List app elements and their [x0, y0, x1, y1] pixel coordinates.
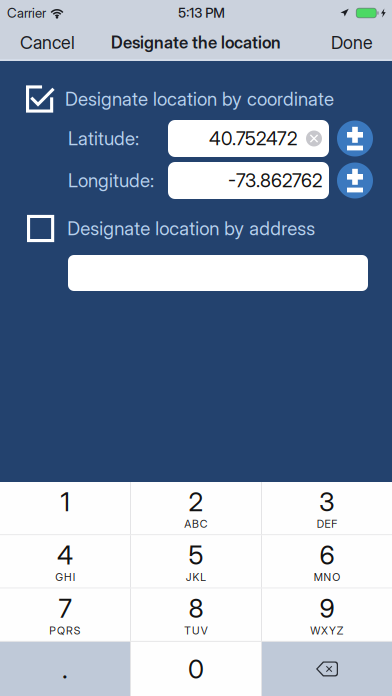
- button[interactable]: 7: [0, 589, 130, 641]
- button[interactable]: 1: [0, 482, 130, 534]
- staticText: 40.752472: [209, 127, 297, 150]
- staticText: Designate location by coordinate: [65, 88, 334, 110]
- staticText: DEF: [317, 517, 337, 530]
- button[interactable]: 5: [131, 535, 261, 588]
- button[interactable]: 4: [0, 535, 130, 588]
- staticText: Carrier: [7, 5, 46, 21]
- button[interactable]: 2: [131, 482, 261, 534]
- staticText: Longitude:: [68, 169, 154, 192]
- button[interactable]: Address: [0, 255, 392, 291]
- staticText: 3: [319, 486, 335, 517]
- button[interactable]: .: [0, 642, 130, 696]
- button[interactable]: Designate location by address: [0, 215, 392, 242]
- staticText: Designate location by address: [67, 217, 315, 240]
- button[interactable]: Delete: [262, 642, 392, 696]
- button[interactable]: 9: [262, 589, 392, 641]
- staticText: 0: [188, 653, 204, 685]
- button[interactable]: Adjust Latitude:: [337, 120, 373, 156]
- staticText: 5: [188, 539, 203, 571]
- button[interactable]: Adjust Longitude:: [337, 162, 373, 198]
- staticText: 7: [58, 593, 71, 624]
- staticText: 1: [60, 486, 69, 517]
- staticText: .: [62, 653, 68, 685]
- button[interactable]: 0: [131, 642, 261, 696]
- staticText: ABC: [184, 517, 208, 530]
- staticText: 4: [57, 539, 73, 571]
- staticText: TUV: [184, 624, 208, 637]
- staticText: 8: [188, 593, 203, 624]
- staticText: GHI: [55, 571, 75, 584]
- button[interactable]: Designate location by coordinate: [0, 85, 392, 113]
- staticText: 5:13 PM: [178, 5, 225, 21]
- staticText: JKL: [186, 571, 206, 584]
- staticText: 9: [319, 593, 334, 624]
- staticText: Done: [331, 32, 373, 53]
- staticText: WXYZ: [310, 624, 344, 637]
- staticText: Cancel: [20, 32, 75, 53]
- staticText: -73.862762: [228, 169, 322, 192]
- button[interactable]: Cancel: [0, 26, 89, 59]
- staticText: Latitude:: [68, 127, 139, 150]
- staticText: MNO: [314, 571, 340, 584]
- staticText: 6: [319, 539, 334, 571]
- staticText: Designate the location: [111, 32, 281, 53]
- staticText: PQRS: [49, 624, 81, 637]
- button[interactable]: Done: [317, 26, 392, 59]
- button[interactable]: 8: [131, 589, 261, 641]
- button[interactable]: 3: [262, 482, 392, 534]
- staticText: 2: [188, 486, 203, 517]
- button[interactable]: 6: [262, 535, 392, 588]
